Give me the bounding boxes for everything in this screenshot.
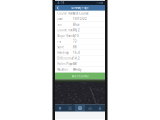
button[interactable]: Course Rating <box>55 28 105 33</box>
staticText: Differential <box>57 57 73 60</box>
staticText: Windy <box>73 68 81 71</box>
staticText: Slope Rating <box>57 34 75 38</box>
button[interactable]: Differential <box>55 56 105 61</box>
button[interactable]: Weather <box>55 67 105 73</box>
staticText: SAVE ROUND <box>71 74 88 78</box>
button[interactable]: Holes Played <box>55 61 105 67</box>
staticText: 72 <box>73 40 77 43</box>
staticText: Course Name <box>57 12 75 15</box>
staticText: 71.2 <box>73 28 80 32</box>
button[interactable]: Date <box>55 16 105 22</box>
staticText: LTE <box>96 2 99 4</box>
staticText: Test Course <box>73 12 89 15</box>
staticText: 16.4 <box>73 51 80 54</box>
staticText: Course Rating <box>57 28 77 32</box>
staticText: Weather <box>57 68 68 71</box>
button[interactable]: Home <box>55 105 65 112</box>
button[interactable]: Rounds <box>65 105 75 112</box>
staticText: Par <box>57 40 61 43</box>
button[interactable]: Par <box>55 39 105 44</box>
staticText: Handicap <box>57 51 69 54</box>
staticText: Date <box>57 17 63 21</box>
staticText: 88 <box>73 45 77 49</box>
staticText: Blue <box>73 23 80 26</box>
staticText: 18 <box>73 62 77 66</box>
button[interactable]: Slope Rating <box>55 33 105 39</box>
button[interactable]: Tee <box>55 22 105 28</box>
button[interactable]: Add Round <box>75 105 85 112</box>
staticText: Score <box>57 45 64 49</box>
button[interactable]: Score <box>55 44 105 50</box>
button[interactable]: Handicap <box>55 50 105 56</box>
button[interactable]: Back <box>55 5 62 11</box>
staticText: 4:18 <box>57 1 64 5</box>
button[interactable]: Profile <box>95 105 105 112</box>
staticText: 10/12/22 <box>73 17 87 21</box>
button[interactable]: Course Name <box>55 11 105 16</box>
staticText: 14.2 <box>73 57 80 60</box>
staticText: Summary Page <box>71 6 89 10</box>
button[interactable]: Stats <box>85 105 95 112</box>
staticText: 113 <box>73 34 79 38</box>
button[interactable]: SAVE ROUND <box>55 73 105 80</box>
staticText: Holes Played <box>57 62 75 66</box>
staticText: Tee <box>57 23 62 26</box>
